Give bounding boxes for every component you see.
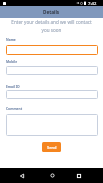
staticText: Send	[47, 145, 57, 150]
staticText: 7:42	[88, 1, 97, 7]
staticText: Mobile	[6, 59, 18, 63]
staticText: Name	[6, 37, 16, 41]
staticText: Email ID	[6, 84, 20, 88]
staticText: Details	[43, 9, 60, 15]
button[interactable]: Send	[42, 142, 61, 152]
button[interactable]	[6, 45, 98, 55]
button[interactable]: Back	[14, 168, 29, 183]
button[interactable]	[6, 66, 98, 75]
staticText: Enter your details and we will contact y…	[0, 19, 103, 33]
button[interactable]	[6, 90, 98, 99]
staticText: Comment	[6, 106, 23, 110]
button[interactable]: Recent apps	[71, 168, 86, 183]
button[interactable]	[6, 114, 98, 136]
button[interactable]: Home	[45, 168, 60, 183]
